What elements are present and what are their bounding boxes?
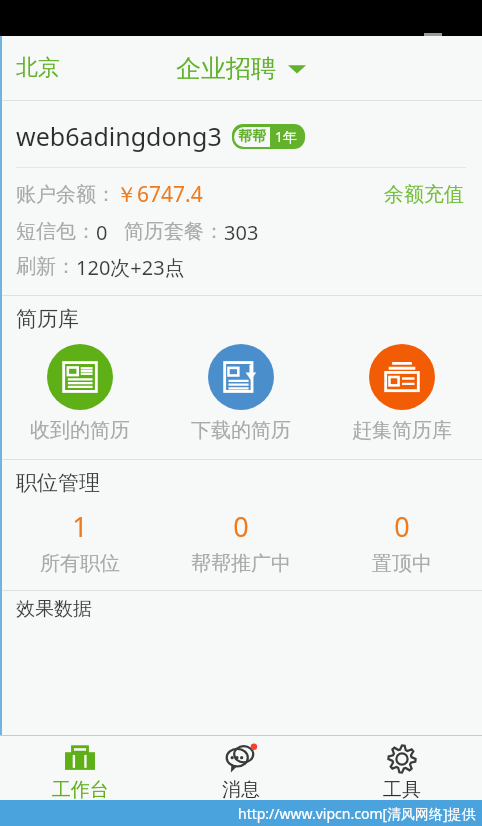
- staticText: 120次+23点: [76, 254, 185, 281]
- button[interactable]: 工具: [321, 736, 482, 800]
- other: 收到的简历: [47, 344, 113, 410]
- staticText: 赶集简历库: [352, 418, 452, 443]
- button[interactable]: 工作台: [0, 736, 160, 800]
- staticText: 0: [394, 508, 410, 545]
- staticText: 工具: [383, 778, 421, 800]
- button[interactable]: 消息: [160, 736, 321, 800]
- staticText: 下载的简历: [191, 418, 291, 443]
- staticText: 帮帮推广中: [191, 551, 291, 576]
- staticText: 企业招聘: [176, 53, 276, 84]
- button[interactable]: 0: [321, 506, 482, 578]
- staticText: 职位管理: [16, 470, 100, 496]
- staticText: ￥6747.4: [116, 180, 203, 209]
- button[interactable]: 1: [0, 506, 160, 578]
- staticText: 1: [72, 508, 88, 545]
- button[interactable]: 北京: [0, 44, 76, 92]
- staticText: 1年: [275, 127, 298, 146]
- staticText: 余额充值: [384, 182, 464, 207]
- button[interactable]: 余额充值: [380, 178, 468, 211]
- button[interactable]: 赶集简历库: [321, 340, 482, 447]
- staticText: 效果数据: [16, 597, 92, 621]
- staticText: 账户余额：: [16, 182, 116, 207]
- staticText: 简历库: [16, 306, 79, 332]
- button[interactable]: web6adingdong3: [0, 101, 482, 167]
- button[interactable]: 0: [160, 506, 321, 578]
- staticText: 北京: [16, 54, 60, 82]
- staticText: 0: [96, 219, 108, 246]
- button[interactable]: 收到的简历: [0, 340, 160, 447]
- staticText: 收到的简历: [30, 418, 130, 443]
- staticText: 帮帮: [238, 128, 266, 146]
- staticText: 消息: [222, 778, 260, 800]
- staticText: 简历套餐：: [124, 219, 224, 244]
- button[interactable]: 企业招聘: [164, 45, 318, 92]
- staticText: 置顶中: [372, 551, 432, 576]
- other: 赶集简历库: [369, 344, 435, 410]
- staticText: 0: [233, 508, 249, 545]
- staticText: http://www.vipcn.com[清风网络]提供: [238, 804, 476, 823]
- staticText: 短信包：: [16, 219, 96, 244]
- staticText: 所有职位: [40, 551, 120, 576]
- staticText: 工作台: [52, 778, 109, 800]
- staticText: web6adingdong3: [16, 119, 222, 153]
- staticText: 刷新：: [16, 254, 76, 279]
- button[interactable]: 下载的简历: [160, 340, 321, 447]
- staticText: 303: [224, 219, 259, 246]
- other: 下载的简历: [208, 344, 274, 410]
